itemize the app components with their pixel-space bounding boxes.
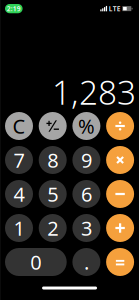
button[interactable]: 3	[72, 214, 100, 242]
button[interactable]: Plus minus	[39, 112, 67, 140]
staticText: 2:19	[7, 4, 21, 13]
staticText: 9	[81, 147, 92, 173]
staticText: 1	[13, 215, 24, 241]
button[interactable]: Multiply	[106, 146, 134, 174]
staticText: 0	[30, 249, 41, 275]
button[interactable]: Add	[106, 214, 134, 242]
staticText: 6	[81, 181, 92, 207]
button[interactable]: Clear	[5, 112, 33, 140]
staticText: 1,283	[52, 70, 136, 114]
staticText: C	[12, 113, 25, 139]
button[interactable]: 4	[5, 180, 33, 208]
button[interactable]: 9	[72, 146, 100, 174]
staticText: 5	[47, 181, 58, 207]
staticText: %	[78, 113, 95, 139]
staticText: 3	[81, 215, 92, 241]
button[interactable]: 5	[39, 180, 67, 208]
button[interactable]: 2	[39, 214, 67, 242]
staticText: .	[84, 249, 89, 275]
button[interactable]: Equals	[106, 248, 134, 276]
staticText: 8	[47, 147, 58, 173]
button[interactable]: Divide	[106, 112, 134, 140]
staticText: 4	[13, 181, 24, 207]
button[interactable]: 0	[5, 248, 67, 276]
button[interactable]: Decimal point	[72, 248, 100, 276]
button[interactable]: Subtract	[106, 180, 134, 208]
staticText: 2	[47, 215, 58, 241]
staticText: 7	[13, 147, 24, 173]
button[interactable]: 7	[5, 146, 33, 174]
button[interactable]: Percent	[72, 112, 100, 140]
button[interactable]: 6	[72, 180, 100, 208]
button[interactable]: 1	[5, 214, 33, 242]
staticText: LTE	[109, 4, 121, 13]
button[interactable]: 8	[39, 146, 67, 174]
